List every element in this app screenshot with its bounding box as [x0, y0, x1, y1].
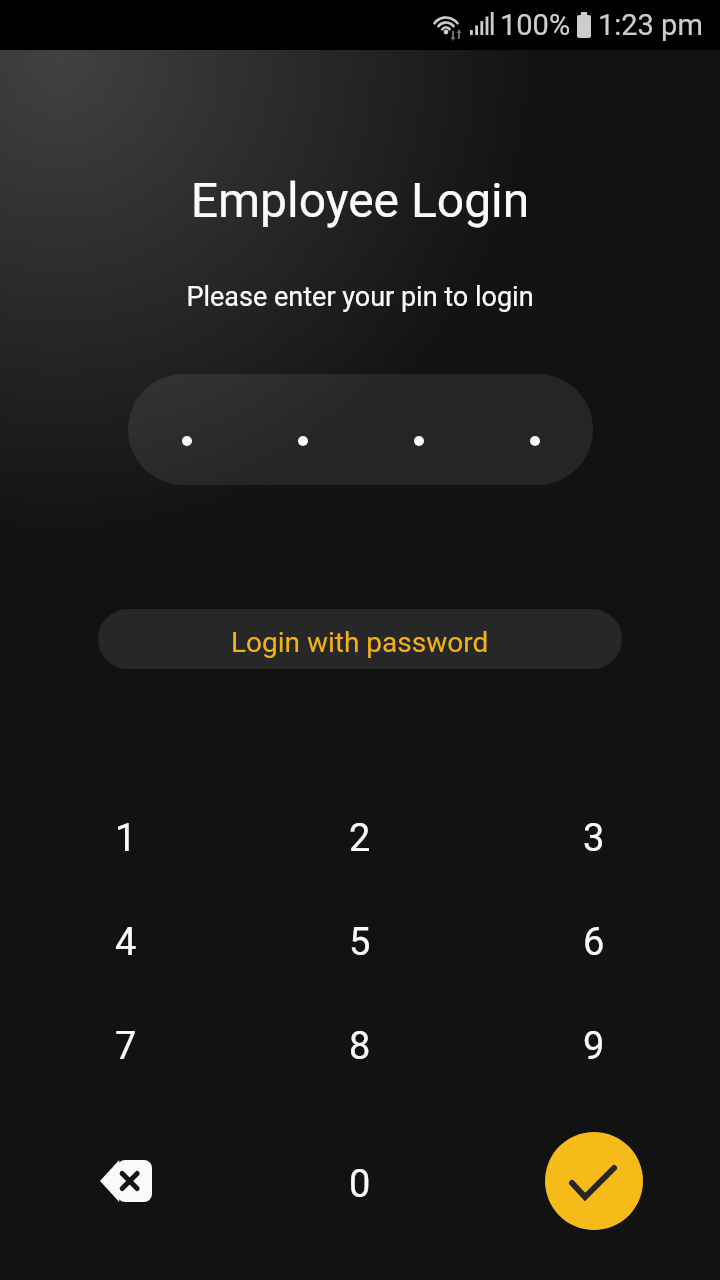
staticText: 5 [349, 920, 371, 965]
staticText: 100% [500, 8, 571, 42]
staticText: 4 [115, 920, 137, 965]
staticText: 8 [349, 1024, 371, 1069]
button[interactable]: 2 [243, 783, 477, 887]
button[interactable]: 9 [477, 991, 711, 1095]
staticText: 1 [115, 816, 137, 861]
button[interactable]: Login with password [98, 609, 622, 669]
staticText: 0 [349, 1162, 371, 1207]
button[interactable]: 7 [9, 991, 243, 1095]
button[interactable]: 3 [477, 783, 711, 887]
button[interactable]: 1 [9, 783, 243, 887]
button[interactable] [545, 1132, 643, 1230]
staticText: 1:23 pm [598, 8, 703, 42]
staticText: Please enter your pin to login [0, 281, 720, 313]
button[interactable] [9, 1129, 243, 1233]
button[interactable]: 0 [243, 1129, 477, 1233]
staticText: 2 [349, 816, 371, 861]
button[interactable]: 8 [243, 991, 477, 1095]
staticText: 6 [583, 920, 605, 965]
button[interactable]: 4 [9, 887, 243, 991]
staticText: Employee Login [0, 172, 720, 228]
staticText: 7 [115, 1024, 137, 1069]
button[interactable]: 5 [243, 887, 477, 991]
button[interactable]: 6 [477, 887, 711, 991]
staticText: 3 [583, 816, 605, 861]
staticText: Login with password [231, 626, 489, 659]
staticText: 9 [583, 1024, 605, 1069]
